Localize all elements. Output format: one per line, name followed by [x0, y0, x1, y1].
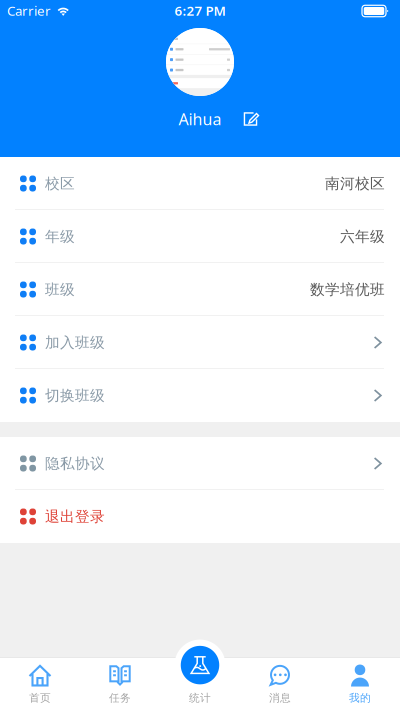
button[interactable]: 首页: [0, 658, 80, 711]
staticText: 隐私协议: [45, 454, 105, 472]
button[interactable]: 退出登录: [0, 490, 400, 543]
staticText: 加入班级: [45, 333, 105, 351]
button[interactable]: 年级: [0, 210, 400, 263]
staticText: 6:27 PM: [174, 2, 225, 19]
staticText: 首页: [29, 691, 51, 704]
staticText: 统计: [189, 691, 211, 704]
button[interactable]: Edit profile name: [241, 111, 260, 126]
staticText: 退出登录: [45, 507, 105, 525]
button[interactable]: 加入班级: [0, 316, 400, 369]
staticText: 消息: [269, 691, 291, 704]
button[interactable]: 切换班级: [0, 369, 400, 422]
staticText: 校区: [45, 174, 75, 192]
staticText: 六年级: [340, 227, 385, 245]
button[interactable]: 消息: [240, 658, 320, 711]
button[interactable]: 隐私协议: [0, 437, 400, 490]
button[interactable]: 任务: [80, 658, 160, 711]
button[interactable]: 我的: [320, 658, 400, 711]
button[interactable]: 班级: [0, 263, 400, 316]
staticText: 数学培优班: [310, 280, 385, 298]
button[interactable]: 统计: [160, 658, 240, 711]
staticText: 我的: [349, 691, 371, 704]
staticText: Aihua: [178, 108, 221, 130]
staticText: 南河校区: [325, 174, 385, 192]
staticText: 班级: [45, 280, 75, 298]
staticText: 切换班级: [45, 386, 105, 404]
staticText: 任务: [109, 691, 131, 704]
staticText: Carrier: [7, 2, 51, 19]
button[interactable]: 统计: [174, 640, 225, 691]
button[interactable]: 校区: [0, 157, 400, 210]
staticText: 年级: [45, 227, 75, 245]
